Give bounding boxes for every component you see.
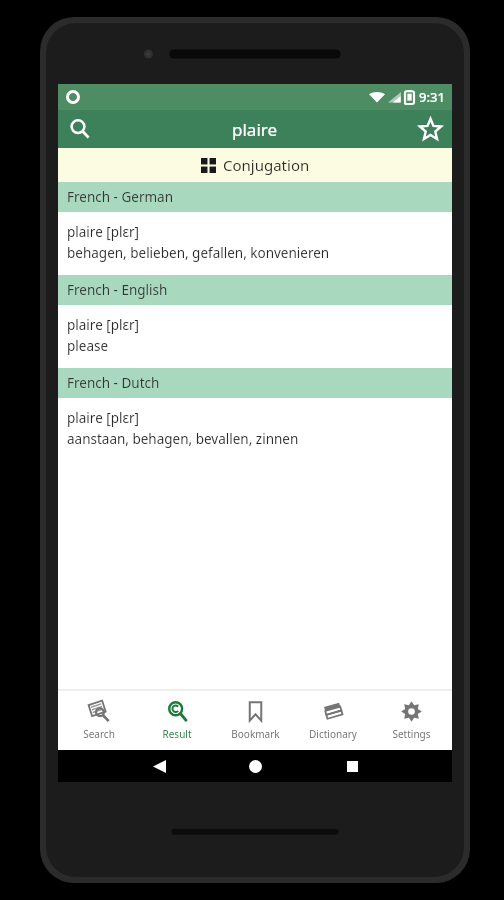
staticText: French - Dutch [67, 374, 160, 392]
staticText: 9:31 [419, 88, 445, 106]
button[interactable]: Search [62, 690, 136, 750]
button[interactable]: French - Dutch [58, 368, 452, 398]
staticText: please [67, 337, 109, 355]
button[interactable]: Conjugation [58, 148, 452, 182]
button[interactable]: French - German [58, 182, 452, 212]
button[interactable]: Bookmark [218, 690, 292, 750]
staticText: Search [83, 727, 115, 741]
staticText: Conjugation [223, 155, 310, 175]
button[interactable]: French - English [58, 275, 452, 305]
staticText: Settings [392, 727, 431, 741]
staticText: Result [162, 727, 192, 741]
button[interactable]: Home [235, 750, 275, 782]
button[interactable]: Dictionary [296, 690, 370, 750]
staticText: aanstaan, behagen, bevallen, zinnen [67, 430, 299, 448]
staticText: French - German [67, 188, 174, 206]
staticText: behagen, belieben, gefallen, konvenieren [67, 244, 330, 262]
button[interactable]: Settings [374, 690, 448, 750]
staticText: plaire [plɛr] [67, 409, 140, 427]
staticText: Bookmark [231, 727, 280, 741]
staticText: plaire [232, 118, 278, 141]
button[interactable]: Result [140, 690, 214, 750]
staticText: plaire [plɛr] [67, 316, 140, 334]
button[interactable]: Search [58, 110, 102, 148]
staticText: French - English [67, 281, 168, 299]
staticText: plaire [plɛr] [67, 223, 140, 241]
button[interactable]: Recent apps [332, 750, 372, 782]
button[interactable]: Bookmark favorite [408, 110, 452, 148]
button[interactable]: plaire [plɛr] [58, 305, 452, 368]
staticText: Dictionary [309, 727, 357, 741]
button[interactable]: Back [139, 750, 179, 782]
button[interactable]: plaire [plɛr] [58, 398, 452, 461]
button[interactable]: plaire [plɛr] [58, 212, 452, 275]
